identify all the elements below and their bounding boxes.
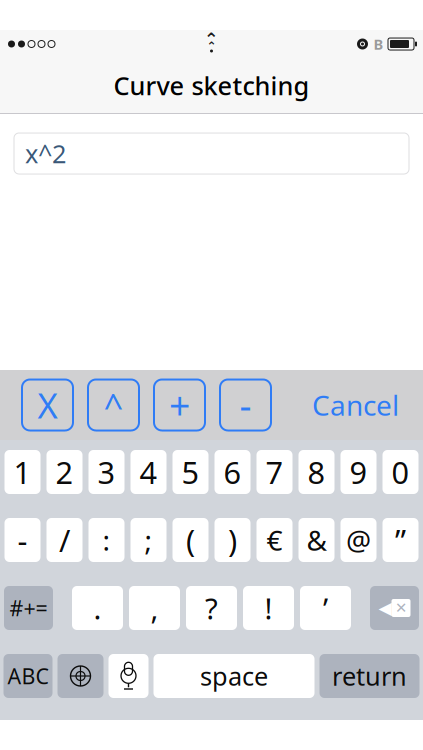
staticText: X <box>37 382 57 428</box>
staticText: ^ <box>103 382 123 428</box>
staticText: ! <box>264 588 272 627</box>
button[interactable]: & <box>298 518 334 562</box>
staticText: ) <box>228 520 237 560</box>
staticText: #+= <box>9 594 47 622</box>
staticText: 3 <box>97 452 115 492</box>
staticText: / <box>59 520 70 560</box>
staticText: € <box>266 521 282 559</box>
staticText: 4 <box>139 452 157 492</box>
button[interactable]: Delete <box>370 586 419 630</box>
button[interactable]: 3 <box>88 450 124 494</box>
button[interactable]: ABC <box>3 654 52 698</box>
button[interactable]: / <box>46 518 82 562</box>
button[interactable]: . <box>72 586 123 630</box>
staticText: 5 <box>181 452 199 492</box>
button[interactable]: return <box>319 654 419 698</box>
staticText: - <box>239 380 251 430</box>
button[interactable]: 5 <box>172 450 208 494</box>
staticText: return <box>332 659 407 693</box>
button[interactable]: X <box>22 379 73 430</box>
staticText: B <box>373 34 383 54</box>
button[interactable]: , <box>129 586 180 630</box>
staticText: 8 <box>307 452 325 492</box>
staticText: ◀ <box>378 598 391 618</box>
button[interactable]: ) <box>214 518 250 562</box>
staticText: ” <box>395 520 406 560</box>
staticText: : <box>102 521 110 559</box>
button[interactable]: : <box>88 518 124 562</box>
button[interactable]: Cancel <box>306 378 405 432</box>
button[interactable]: 8 <box>298 450 334 494</box>
staticText: - <box>17 520 27 560</box>
button[interactable]: + <box>154 379 205 430</box>
button[interactable]: ’ <box>300 586 351 630</box>
staticText: . <box>93 588 101 627</box>
staticText: ? <box>205 588 218 627</box>
button[interactable]: Next keyboard <box>57 654 103 698</box>
button[interactable]: 7 <box>256 450 292 494</box>
staticText: 9 <box>349 452 367 492</box>
button[interactable]: - <box>220 379 271 430</box>
button[interactable]: Dictation <box>108 654 148 698</box>
button[interactable]: 9 <box>340 450 376 494</box>
button[interactable]: 4 <box>130 450 166 494</box>
button[interactable]: 2 <box>46 450 82 494</box>
staticText: 7 <box>265 452 283 492</box>
staticText: x^2 <box>25 137 66 170</box>
button[interactable]: ? <box>186 586 237 630</box>
button[interactable]: ! <box>243 586 294 630</box>
staticText: ✕ <box>395 600 407 616</box>
staticText: ; <box>144 521 152 559</box>
button[interactable]: ( <box>172 518 208 562</box>
staticText: 1 <box>13 452 31 492</box>
staticText: @ <box>346 521 371 559</box>
staticText: ( <box>186 520 195 560</box>
button[interactable]: ^ <box>88 379 139 430</box>
staticText: & <box>306 521 326 559</box>
button[interactable]: space <box>153 654 314 698</box>
button[interactable]: x^2 <box>14 133 409 174</box>
staticText: ⌃ <box>206 39 216 53</box>
staticText: space <box>200 659 268 693</box>
button[interactable]: ” <box>382 518 418 562</box>
staticText: ’ <box>323 588 328 627</box>
staticText: Cancel <box>312 386 399 424</box>
button[interactable]: - <box>4 518 40 562</box>
button[interactable]: ; <box>130 518 166 562</box>
button[interactable]: 1 <box>4 450 40 494</box>
button[interactable]: € <box>256 518 292 562</box>
staticText: 6 <box>223 452 241 492</box>
staticText: 0 <box>391 452 409 492</box>
staticText: , <box>150 588 158 627</box>
button[interactable]: #+= <box>4 586 53 630</box>
button[interactable]: @ <box>340 518 376 562</box>
staticText: + <box>169 380 190 430</box>
staticText: ABC <box>7 662 48 690</box>
staticText: 2 <box>55 452 73 492</box>
button[interactable]: 0 <box>382 450 418 494</box>
button[interactable]: 6 <box>214 450 250 494</box>
staticText: Curve sketching <box>113 69 309 102</box>
staticText: ⌃ <box>204 29 219 49</box>
